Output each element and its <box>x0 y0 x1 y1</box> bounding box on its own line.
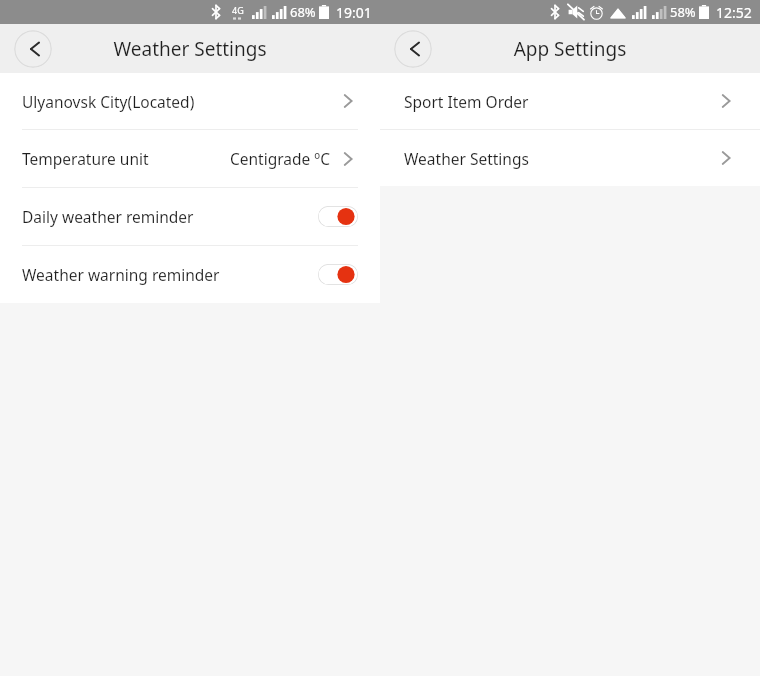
button[interactable]: Weather warning reminder <box>0 246 380 303</box>
button[interactable]: Daily weather reminder <box>318 206 358 227</box>
staticText: Weather warning reminder <box>22 264 220 285</box>
staticText: 4G <box>232 4 244 16</box>
button[interactable]: Daily weather reminder <box>0 188 380 245</box>
button[interactable]: Weather Settings <box>380 130 760 186</box>
button[interactable]: Ulyanovsk City(Located) <box>0 73 380 129</box>
staticText: 12:52 <box>716 3 752 22</box>
staticText: Sport Item Order <box>404 91 529 112</box>
staticText: 68% <box>290 3 316 21</box>
staticText: Centigrade ºC <box>230 148 330 169</box>
button[interactable]: Back <box>14 30 52 68</box>
staticText: Weather Settings <box>0 36 380 62</box>
staticText: App Settings <box>380 36 760 62</box>
button[interactable]: Weather warning reminder <box>318 264 358 285</box>
staticText: Ulyanovsk City(Located) <box>22 91 195 112</box>
button[interactable]: Temperature unit <box>0 130 380 187</box>
staticText: Daily weather reminder <box>22 206 194 227</box>
button[interactable]: Sport Item Order <box>380 73 760 129</box>
button[interactable]: Back <box>394 30 432 68</box>
staticText: Temperature unit <box>22 148 149 169</box>
staticText: Weather Settings <box>404 148 529 169</box>
staticText: 19:01 <box>336 3 372 22</box>
staticText: 58% <box>670 3 696 21</box>
